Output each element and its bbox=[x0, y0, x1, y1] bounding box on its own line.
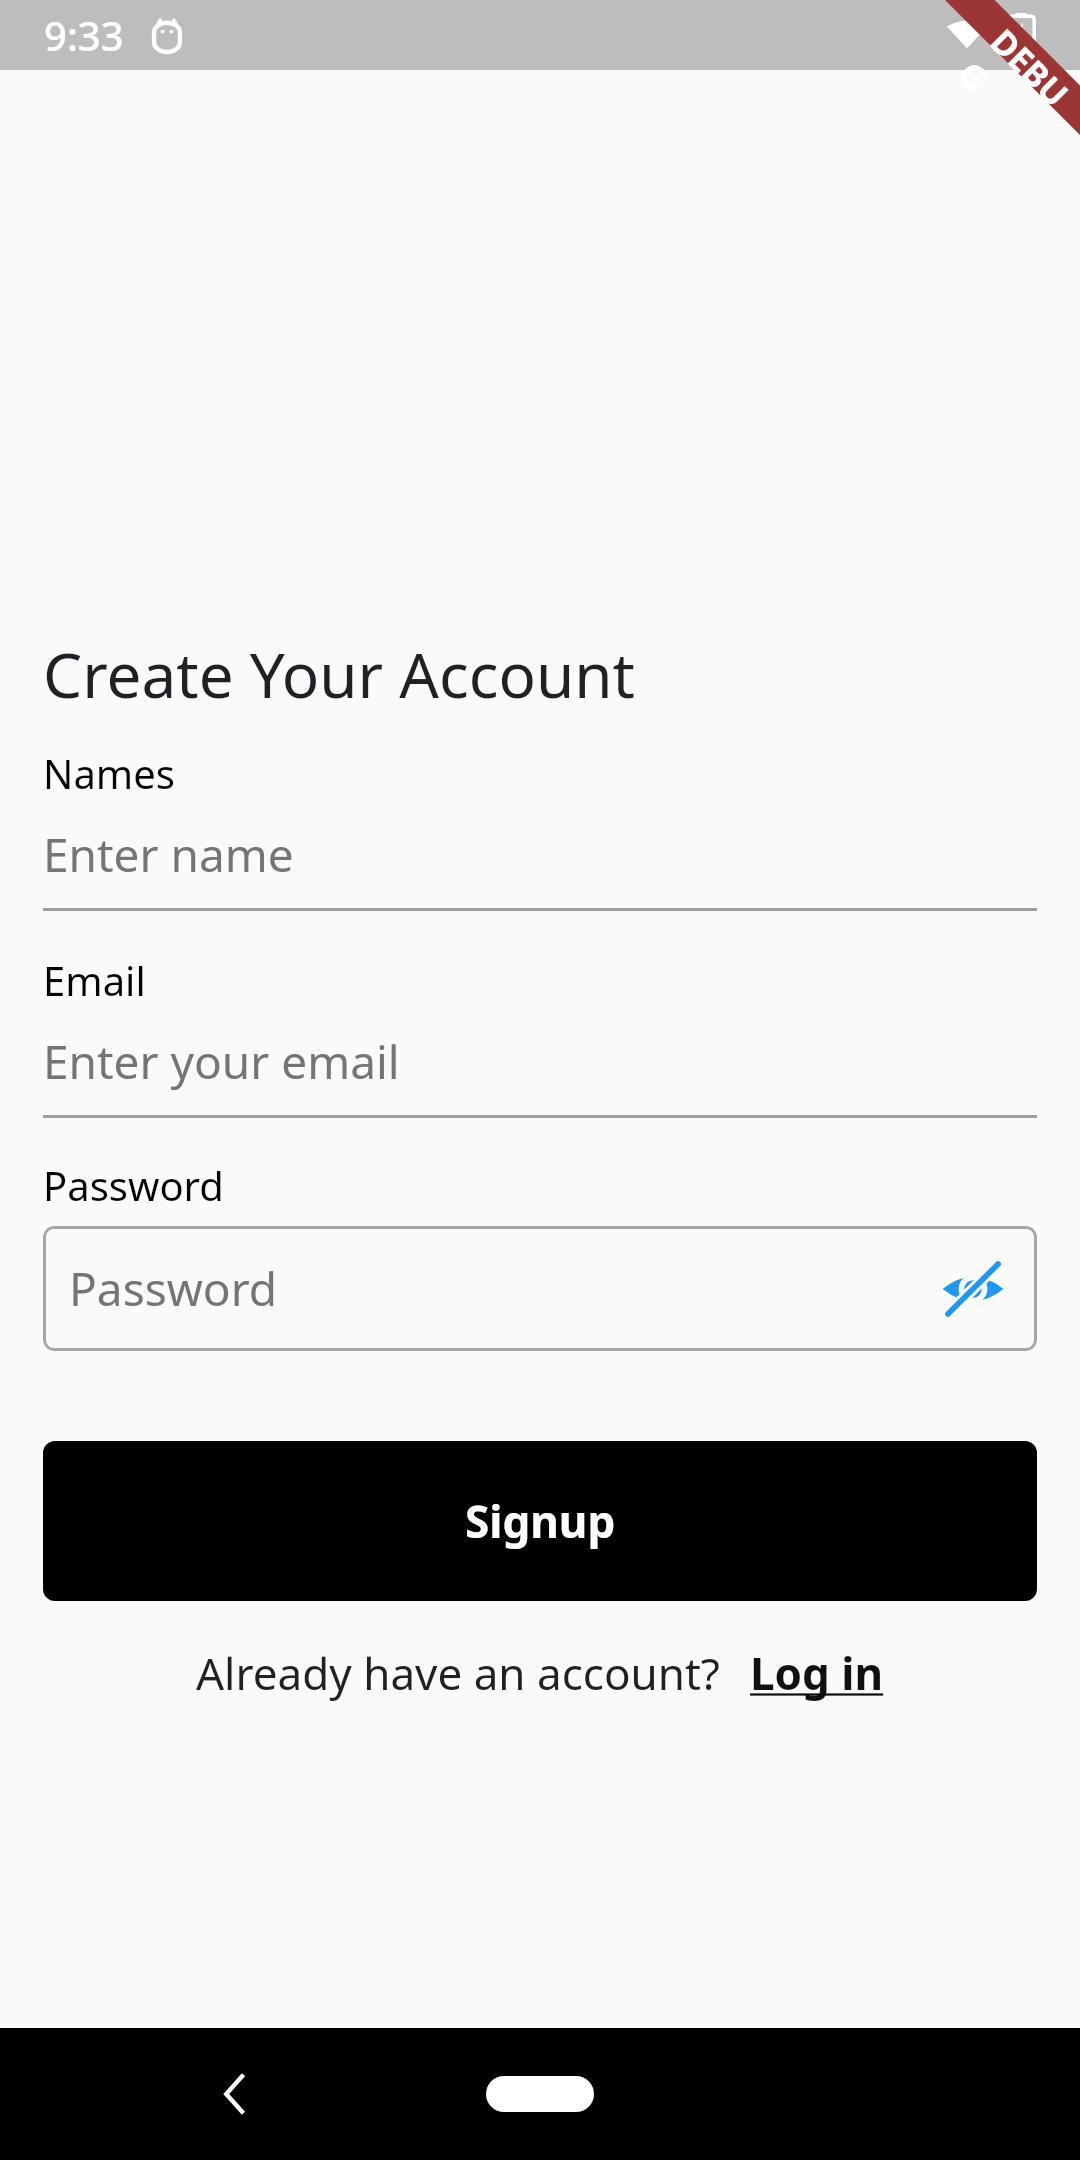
button[interactable]: Enter name bbox=[43, 800, 1037, 908]
button[interactable]: Home bbox=[486, 2076, 594, 2112]
button[interactable]: Back bbox=[200, 2059, 270, 2129]
staticText: Signup bbox=[465, 1491, 616, 1551]
staticText: Email bbox=[43, 953, 146, 1007]
staticText: Password bbox=[69, 1257, 935, 1320]
staticText: Already have an account? bbox=[196, 1643, 720, 1703]
staticText: Password bbox=[43, 1158, 224, 1212]
staticText: Create Your Account bbox=[43, 632, 635, 716]
button[interactable]: Signup bbox=[43, 1441, 1037, 1601]
staticText: Log in bbox=[750, 1643, 884, 1703]
button[interactable]: Log in bbox=[750, 1643, 884, 1703]
staticText: Enter name bbox=[43, 823, 294, 886]
button[interactable]: Show password bbox=[935, 1251, 1011, 1327]
staticText: Names bbox=[43, 746, 175, 800]
staticText: 9:33 bbox=[44, 8, 124, 62]
staticText: Enter your email bbox=[43, 1030, 400, 1093]
staticText: DEBUG bbox=[948, 18, 1080, 166]
button[interactable]: Enter your email bbox=[43, 1007, 1037, 1115]
button[interactable]: Password bbox=[43, 1226, 1037, 1351]
